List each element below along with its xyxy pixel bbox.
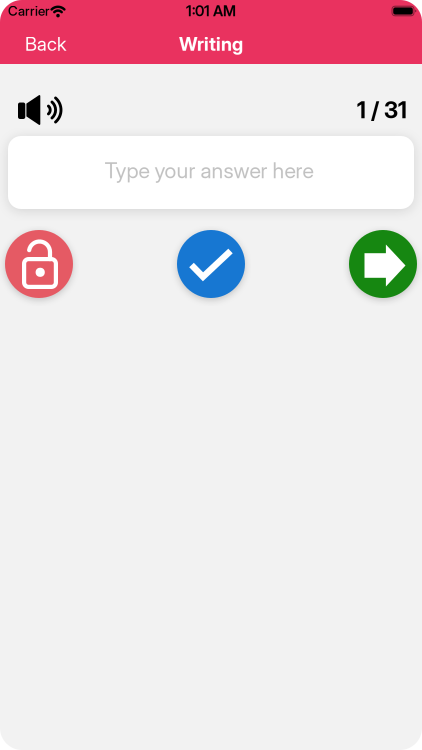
button[interactable]: Unlock answer <box>5 230 73 298</box>
button[interactable]: Back <box>0 27 66 61</box>
staticText: Back <box>25 33 66 55</box>
staticText: Writing <box>179 33 243 55</box>
button[interactable]: Type your answer here <box>8 136 414 209</box>
staticText: Carrier <box>8 3 50 19</box>
staticText: 1:01 AM <box>186 2 236 20</box>
button[interactable]: Play audio <box>18 95 62 125</box>
button[interactable]: Next question <box>349 230 417 298</box>
staticText: 1 / 31 <box>357 97 407 123</box>
button[interactable]: Check answer <box>177 230 245 298</box>
staticText: Type your answer here <box>104 158 313 183</box>
